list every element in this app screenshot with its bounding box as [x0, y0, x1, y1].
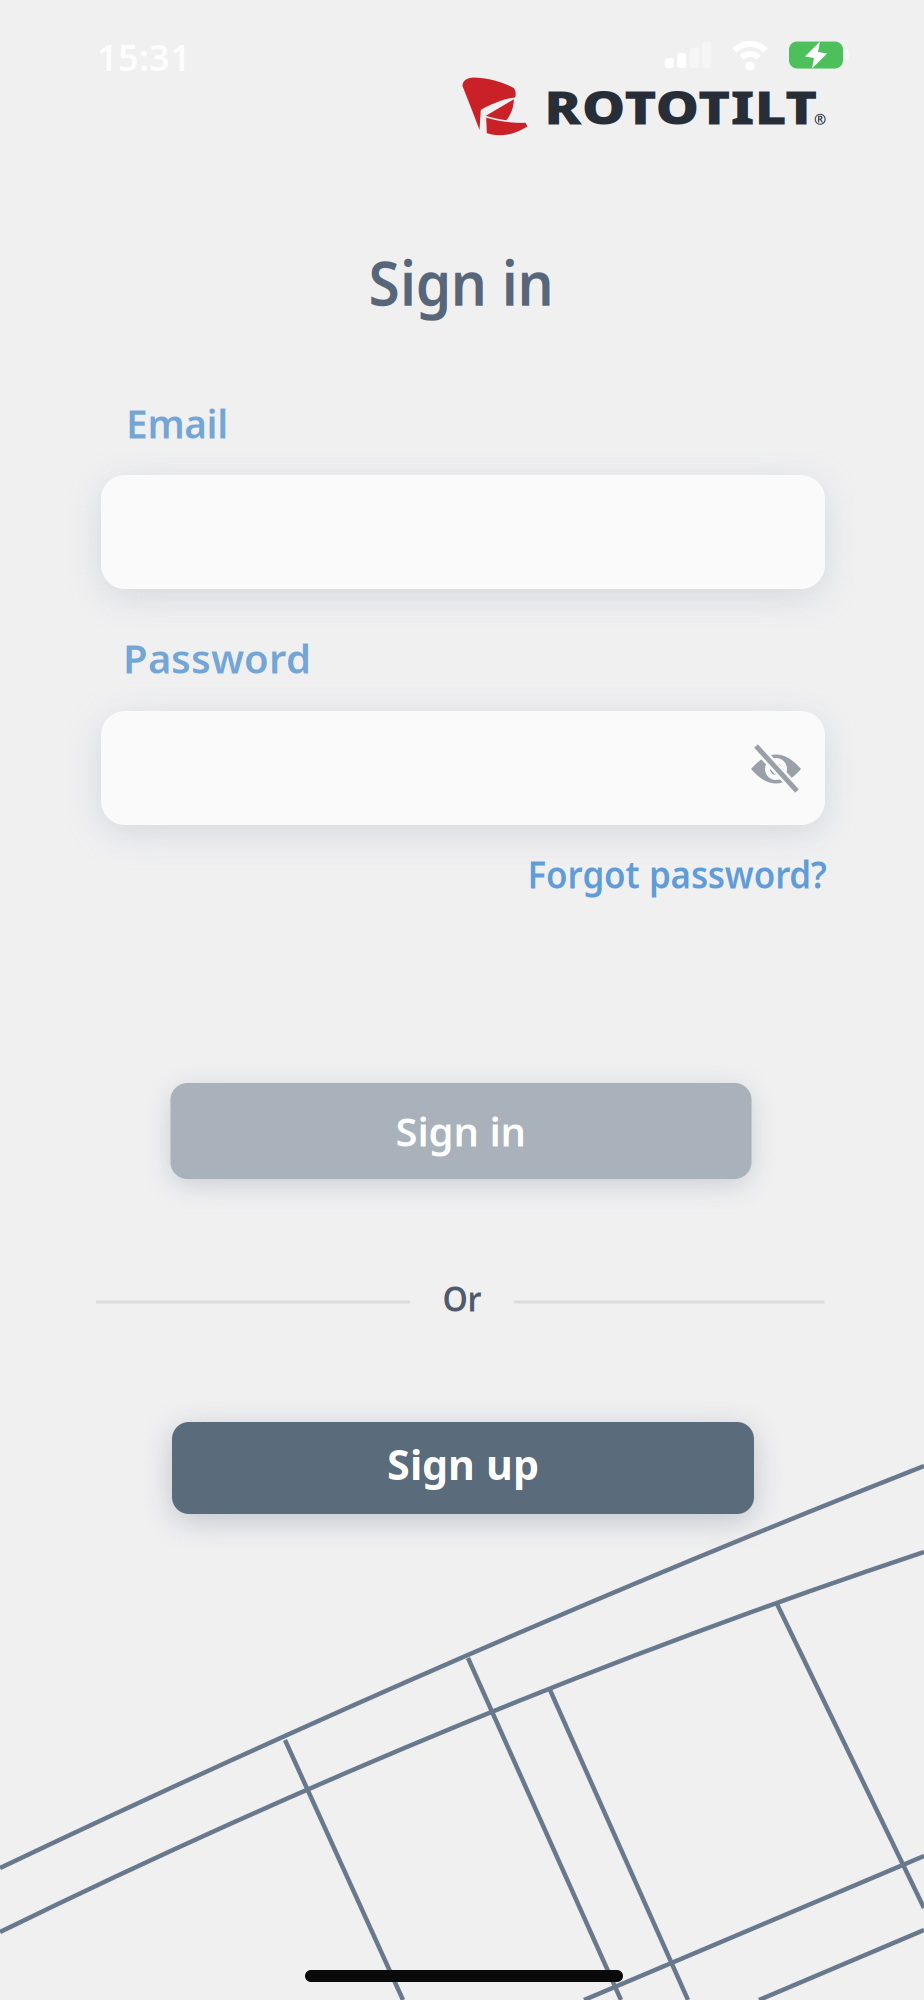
- button[interactable]: Forgot password?: [517, 849, 837, 899]
- staticText: Forgot password?: [517, 849, 837, 899]
- button[interactable]: [750, 748, 802, 790]
- staticText: ®: [814, 109, 826, 129]
- button[interactable]: Sign up: [172, 1422, 754, 1514]
- staticText: Sign in: [395, 1104, 526, 1157]
- staticText: 15:31: [97, 33, 191, 81]
- staticText: ROTOTILT: [568, 77, 794, 137]
- staticText: Or: [441, 1275, 483, 1321]
- button[interactable]: [101, 711, 825, 825]
- staticText: Sign up: [387, 1437, 539, 1491]
- staticText: Sign in: [361, 241, 561, 323]
- button[interactable]: Sign in: [170, 1083, 751, 1179]
- staticText: Password: [123, 631, 311, 684]
- staticText: Email: [124, 396, 229, 449]
